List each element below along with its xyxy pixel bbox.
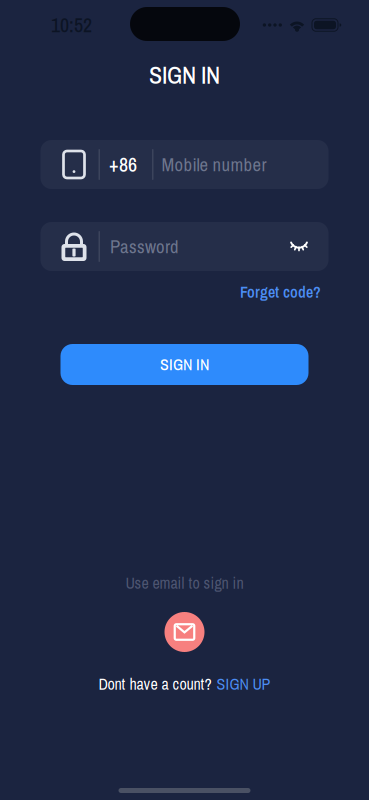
staticText: Mobile number — [161, 152, 266, 177]
staticText: Use email to sign in — [125, 572, 243, 594]
staticText: Password — [110, 234, 179, 259]
button[interactable]: Show password — [280, 222, 328, 271]
staticText: SIGN IN — [149, 59, 220, 91]
staticText: Dont have a count? — [98, 673, 211, 695]
staticText: 10:52 — [51, 11, 92, 38]
button[interactable]: Forget code? — [240, 282, 321, 302]
button[interactable]: SIGN IN — [60, 344, 308, 385]
button[interactable]: Sign in with email — [164, 612, 204, 652]
staticText: +86 — [109, 151, 137, 178]
button[interactable]: SIGN UP — [216, 673, 270, 695]
staticText: SIGN UP — [216, 673, 270, 695]
staticText: Forget code? — [240, 281, 321, 303]
staticText: SIGN IN — [160, 354, 209, 375]
